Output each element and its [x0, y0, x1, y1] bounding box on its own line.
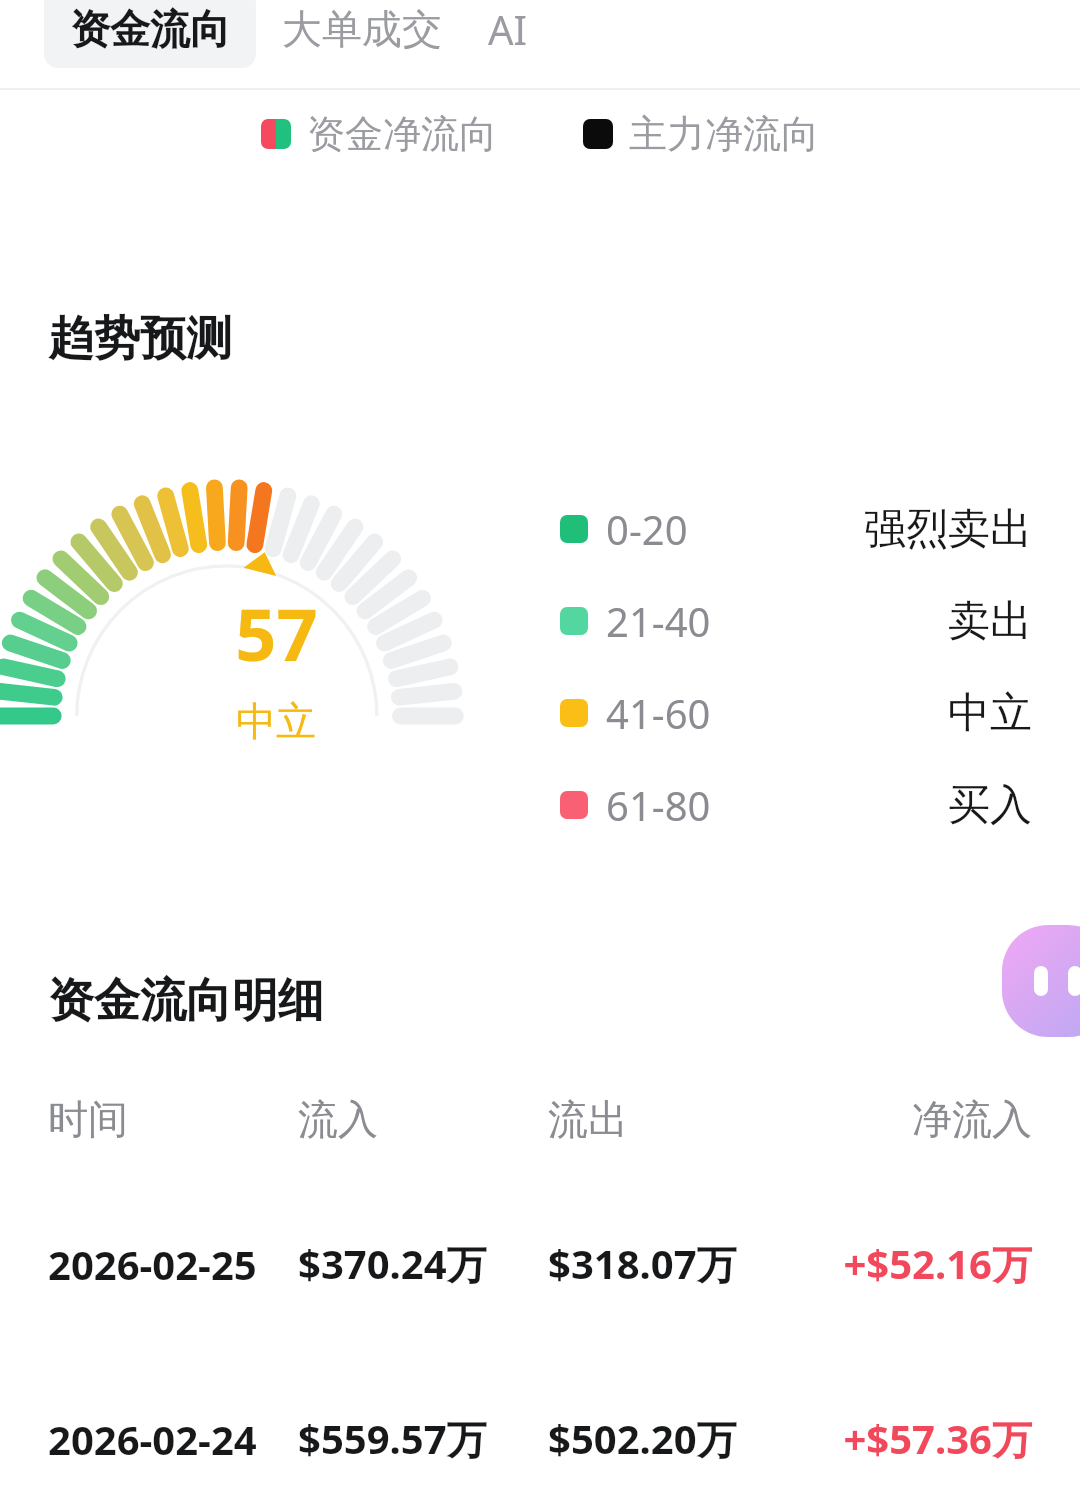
- staticText: 中立: [948, 687, 1032, 740]
- other: 趋势预测仪表盘 57 中立: [0, 444, 560, 844]
- button[interactable]: AI: [468, 0, 548, 70]
- button[interactable]: 21-40: [560, 594, 1032, 648]
- staticText: $559.57万: [298, 1411, 487, 1466]
- button[interactable]: 大单成交: [256, 0, 468, 68]
- staticText: 57: [235, 584, 318, 682]
- button[interactable]: 0-20: [560, 502, 1032, 556]
- staticText: +$52.16万: [843, 1236, 1032, 1291]
- button[interactable]: 资金流向: [44, 0, 256, 68]
- staticText: 趋势预测: [48, 310, 232, 368]
- staticText: 61-80: [606, 778, 711, 832]
- button[interactable]: 2026-02-25: [0, 1236, 1080, 1291]
- staticText: 2026-02-25: [48, 1237, 257, 1291]
- staticText: 0-20: [606, 502, 688, 556]
- button[interactable]: AI 助手: [1002, 925, 1080, 1037]
- staticText: $370.24万: [298, 1236, 487, 1291]
- staticText: 强烈卖出: [864, 503, 1032, 556]
- staticText: 流出: [548, 1094, 628, 1144]
- staticText: $502.20万: [548, 1411, 737, 1466]
- staticText: 资金净流向: [307, 110, 497, 158]
- staticText: 买入: [948, 779, 1032, 832]
- staticText: 资金流向明细: [48, 972, 324, 1030]
- staticText: 中立: [236, 696, 316, 746]
- staticText: 大单成交: [282, 4, 442, 54]
- staticText: +$57.36万: [843, 1411, 1032, 1466]
- staticText: 资金流向: [70, 4, 230, 54]
- staticText: 2026-02-24: [48, 1412, 257, 1466]
- button[interactable]: 2026-02-24: [0, 1411, 1080, 1466]
- staticText: 主力净流向: [629, 110, 819, 158]
- staticText: 净流入: [912, 1094, 1032, 1144]
- button[interactable]: 61-80: [560, 778, 1032, 832]
- staticText: 时间: [48, 1094, 128, 1144]
- staticText: $318.07万: [548, 1236, 737, 1291]
- staticText: 41-60: [606, 686, 711, 740]
- staticText: 21-40: [606, 594, 711, 648]
- button[interactable]: 时间: [0, 1094, 1080, 1144]
- staticText: 卖出: [948, 595, 1032, 648]
- staticText: AI: [488, 2, 528, 56]
- staticText: 流入: [298, 1094, 378, 1144]
- button[interactable]: 41-60: [560, 686, 1032, 740]
